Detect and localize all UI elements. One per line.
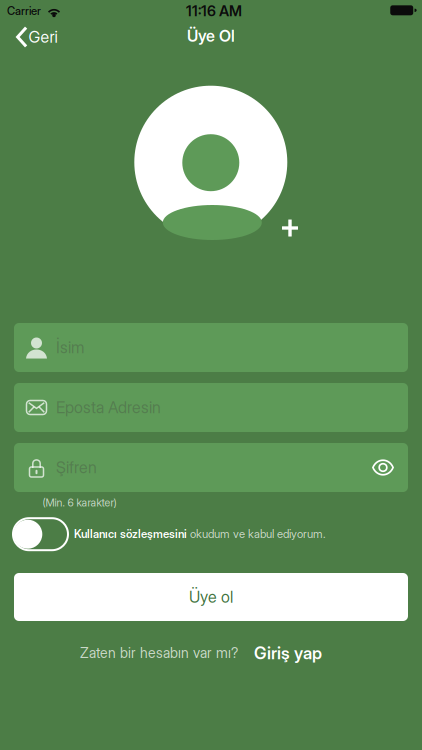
staticText: okudum ve kabul ediyorum. — [187, 527, 325, 541]
staticText: Üye Ol — [187, 26, 235, 46]
staticText: 11:16 AM — [186, 2, 242, 20]
staticText: (Min. 6 karakter) — [42, 496, 116, 509]
staticText: Eposta Adresin — [56, 398, 161, 417]
staticText: Zaten bir hesabın var mı? — [80, 644, 238, 661]
button[interactable]: Zaten bir hesabın var mı? — [80, 640, 322, 666]
staticText: Giriş yap — [254, 643, 322, 663]
button[interactable]: Geri — [16, 18, 60, 56]
staticText: Üye ol — [189, 587, 233, 607]
button[interactable]: Üye ol — [14, 573, 408, 621]
staticText: Kullanıcı sözleşmesini — [74, 527, 187, 541]
button[interactable]: Accept user agreement — [13, 518, 68, 550]
button[interactable]: Show password — [372, 459, 394, 476]
staticText: Şifren — [56, 458, 97, 477]
button[interactable]: Kullanıcı sözleşmesini — [74, 522, 326, 546]
staticText: İsim — [56, 338, 84, 357]
staticText: Carrier — [7, 4, 41, 18]
staticText: Geri — [28, 27, 57, 47]
button[interactable]: Add profile photo — [275, 213, 305, 243]
